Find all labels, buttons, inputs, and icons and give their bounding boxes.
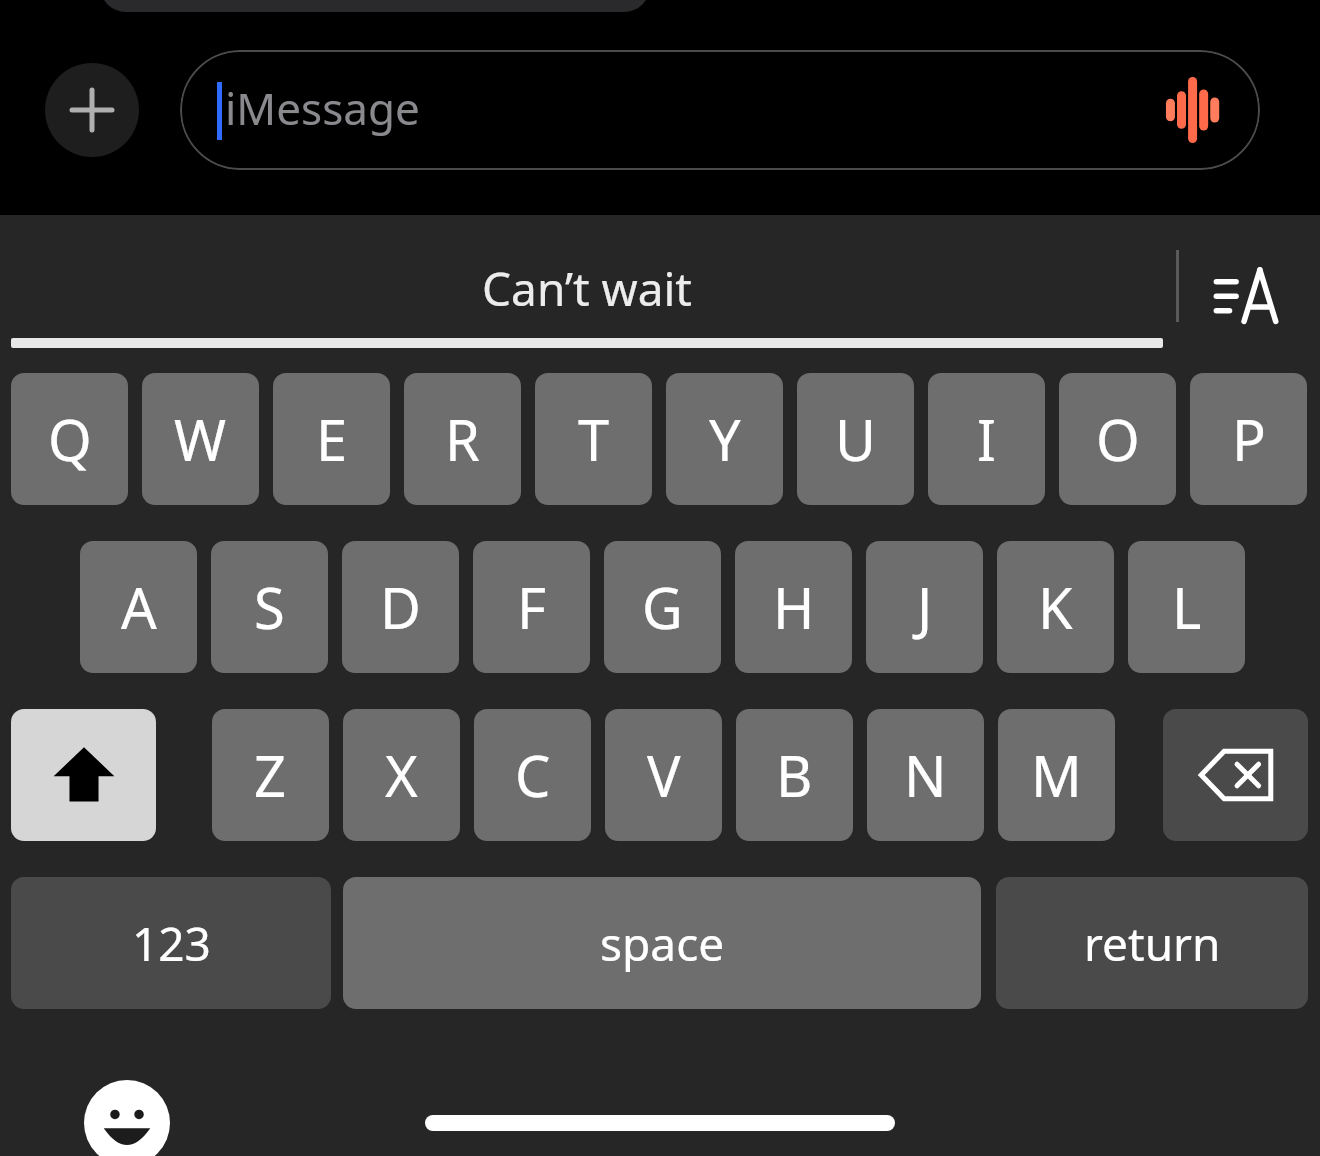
staticText: H: [773, 569, 815, 645]
button[interactable]: iMessage: [180, 50, 1260, 170]
button[interactable]: Add attachment: [45, 63, 139, 157]
button[interactable]: W: [142, 373, 259, 505]
staticText: Q: [48, 401, 92, 477]
staticText: D: [380, 569, 421, 645]
button[interactable]: Audio message: [1158, 74, 1230, 146]
button[interactable]: I: [928, 373, 1045, 505]
staticText: V: [647, 737, 681, 813]
staticText: S: [254, 569, 285, 645]
button[interactable]: Text formatting: [1200, 247, 1296, 343]
staticText: 123: [132, 912, 211, 975]
button[interactable]: Shift: [11, 709, 156, 841]
button[interactable]: H: [735, 541, 852, 673]
staticText: L: [1172, 569, 1202, 645]
staticText: R: [445, 401, 480, 477]
button[interactable]: G: [604, 541, 721, 673]
staticText: N: [904, 737, 947, 813]
staticText: U: [835, 401, 876, 477]
staticText: space: [600, 912, 725, 975]
button[interactable]: Y: [666, 373, 783, 505]
staticText: return: [1084, 912, 1221, 975]
staticText: G: [642, 569, 683, 645]
button[interactable]: B: [736, 709, 853, 841]
button[interactable]: P: [1190, 373, 1307, 505]
button[interactable]: A: [80, 541, 197, 673]
button[interactable]: V: [605, 709, 722, 841]
button[interactable]: C: [474, 709, 591, 841]
staticText: Y: [709, 401, 741, 477]
button[interactable]: X: [343, 709, 460, 841]
button[interactable]: J: [866, 541, 983, 673]
staticText: iMessage: [225, 78, 420, 138]
staticText: I: [977, 401, 996, 477]
staticText: T: [578, 401, 610, 477]
button[interactable]: S: [211, 541, 328, 673]
button[interactable]: M: [998, 709, 1115, 841]
staticText: C: [515, 737, 551, 813]
button[interactable]: F: [473, 541, 590, 673]
staticText: P: [1232, 401, 1266, 477]
staticText: M: [1031, 737, 1082, 813]
button[interactable]: N: [867, 709, 984, 841]
button[interactable]: D: [342, 541, 459, 673]
staticText: J: [917, 569, 933, 645]
staticText: E: [316, 401, 348, 477]
button[interactable]: return: [996, 877, 1308, 1009]
staticText: B: [776, 737, 813, 813]
button[interactable]: Emoji keyboard: [84, 1080, 170, 1156]
staticText: Can’t wait: [482, 257, 692, 320]
staticText: F: [517, 569, 547, 645]
staticText: K: [1038, 569, 1073, 645]
button[interactable]: T: [535, 373, 652, 505]
button[interactable]: space: [343, 877, 981, 1009]
button[interactable]: K: [997, 541, 1114, 673]
button[interactable]: L: [1128, 541, 1245, 673]
staticText: O: [1096, 401, 1140, 477]
button[interactable]: O: [1059, 373, 1176, 505]
button[interactable]: 123: [11, 877, 331, 1009]
staticText: W: [174, 401, 227, 477]
staticText: Z: [254, 737, 287, 813]
button[interactable]: Z: [212, 709, 329, 841]
button[interactable]: Can’t wait: [11, 243, 1163, 333]
button[interactable]: U: [797, 373, 914, 505]
staticText: A: [121, 569, 157, 645]
button[interactable]: Backspace: [1163, 709, 1308, 841]
button[interactable]: Q: [11, 373, 128, 505]
staticText: X: [385, 737, 418, 813]
button[interactable]: E: [273, 373, 390, 505]
button[interactable]: R: [404, 373, 521, 505]
